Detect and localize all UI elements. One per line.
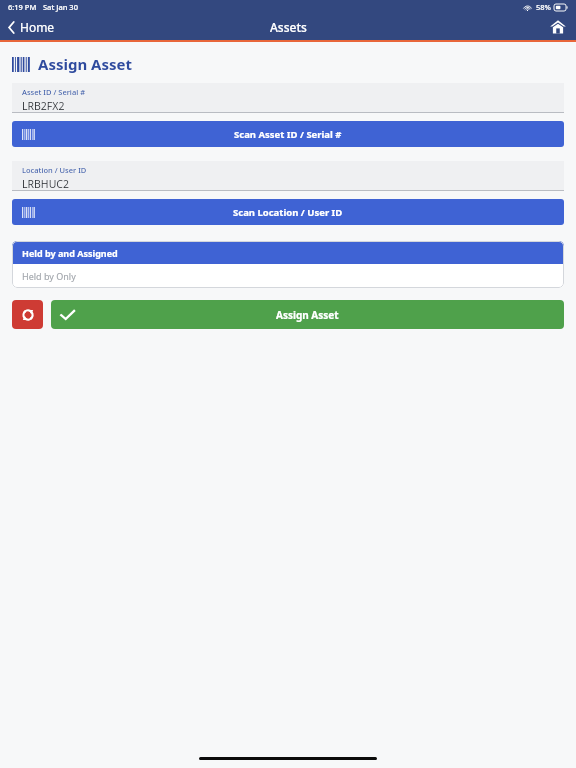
staticText: Asset ID / Serial #: [22, 87, 85, 97]
staticText: Assign Asset: [38, 54, 132, 74]
staticText: Sat Jan 30: [43, 2, 78, 12]
button[interactable]: Held by Only: [12, 264, 564, 288]
button[interactable]: Scan Location / User ID: [12, 199, 564, 225]
staticText: LRBHUC2: [22, 177, 69, 190]
staticText: Location / User ID: [22, 165, 87, 175]
staticText: 6:19 PM: [8, 2, 37, 12]
staticText: Scan Location / User ID: [233, 206, 343, 219]
button[interactable]: Scan Asset ID / Serial #: [12, 121, 564, 147]
button[interactable]: Assign Asset: [51, 300, 564, 329]
button[interactable]: Refresh: [12, 300, 43, 329]
button[interactable]: Location / User ID: [12, 161, 564, 191]
staticText: Assign Asset: [276, 308, 339, 322]
staticText: Assets: [270, 19, 307, 35]
staticText: Home: [20, 19, 55, 35]
staticText: LRB2FX2: [22, 99, 65, 112]
staticText: Held by and Assigned: [22, 247, 118, 259]
staticText: Held by Only: [22, 270, 76, 282]
button[interactable]: Home: [0, 16, 65, 38]
staticText: 58%: [536, 2, 551, 12]
button[interactable]: Asset ID / Serial #: [12, 83, 564, 113]
button[interactable]: Held by and Assigned: [12, 241, 564, 264]
staticText: Scan Asset ID / Serial #: [234, 128, 342, 141]
button[interactable]: Home: [540, 16, 576, 38]
